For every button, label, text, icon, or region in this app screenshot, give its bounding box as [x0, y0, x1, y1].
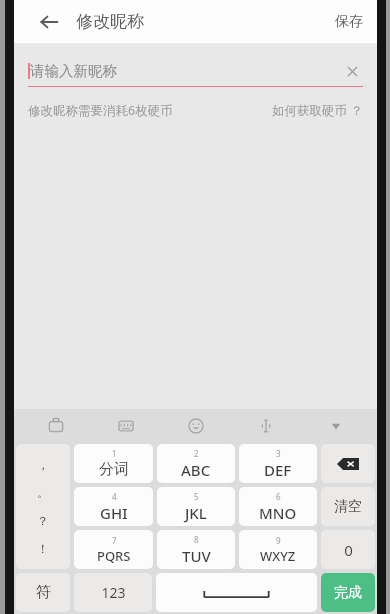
- button[interactable]: Clipboard: [20, 409, 91, 442]
- staticText: 保存: [335, 13, 363, 31]
- staticText: 1: [112, 448, 117, 459]
- staticText: 修改昵称需要消耗6枚硬币: [28, 102, 173, 119]
- staticText: GHI: [100, 503, 128, 523]
- button[interactable]: Cursor: [231, 409, 301, 442]
- staticText: JKL: [185, 503, 207, 523]
- button[interactable]: 符: [16, 573, 70, 612]
- staticText: 5: [194, 491, 199, 502]
- staticText: 请输入新昵称: [30, 62, 117, 80]
- button[interactable]: 9: [239, 530, 317, 569]
- button[interactable]: 5: [157, 487, 235, 526]
- staticText: 6: [276, 491, 281, 502]
- staticText: 0: [344, 540, 353, 560]
- button[interactable]: 完成: [321, 573, 375, 612]
- staticText: 修改昵称: [76, 11, 144, 32]
- staticText: ？: [37, 513, 49, 528]
- button[interactable]: Backspace: [321, 444, 375, 483]
- staticText: 9: [276, 535, 281, 546]
- staticText: 清空: [334, 498, 362, 516]
- staticText: ，: [37, 457, 49, 472]
- button[interactable]: 4: [74, 487, 153, 526]
- button[interactable]: 2: [157, 444, 235, 483]
- button[interactable]: Hide keyboard: [301, 409, 371, 442]
- button[interactable]: 8: [157, 530, 235, 569]
- staticText: ABC: [181, 460, 211, 480]
- button[interactable]: Keyboard: [91, 409, 161, 442]
- button[interactable]: 清空: [321, 487, 375, 526]
- button[interactable]: Emoji: [161, 409, 231, 442]
- button[interactable]: [156, 573, 317, 612]
- staticText: MNO: [259, 503, 297, 523]
- staticText: 7: [112, 535, 117, 546]
- staticText: 123: [101, 583, 126, 602]
- staticText: 完成: [334, 584, 362, 602]
- button[interactable]: 123: [74, 573, 152, 612]
- button[interactable]: ，: [16, 444, 70, 569]
- button[interactable]: 6: [239, 487, 317, 526]
- staticText: 如何获取硬币 ？: [272, 102, 363, 119]
- staticText: 分词: [99, 460, 129, 479]
- staticText: PQRS: [97, 547, 131, 565]
- staticText: TUV: [182, 546, 211, 566]
- button[interactable]: Clear: [341, 60, 363, 82]
- staticText: 3: [276, 448, 281, 459]
- staticText: 2: [194, 448, 199, 459]
- button[interactable]: Back: [34, 7, 64, 37]
- staticText: WXYZ: [260, 547, 296, 565]
- button[interactable]: 7: [74, 530, 153, 569]
- button[interactable]: 如何获取硬币 ？: [272, 99, 363, 122]
- staticText: 符: [36, 583, 51, 602]
- staticText: 。: [37, 485, 49, 500]
- button[interactable]: 1: [74, 444, 153, 483]
- button[interactable]: 0: [321, 530, 375, 569]
- button[interactable]: 3: [239, 444, 317, 483]
- staticText: ！: [37, 541, 49, 556]
- staticText: DEF: [264, 460, 292, 480]
- staticText: 8: [194, 534, 199, 545]
- button[interactable]: 保存: [321, 5, 377, 39]
- staticText: 4: [112, 491, 117, 502]
